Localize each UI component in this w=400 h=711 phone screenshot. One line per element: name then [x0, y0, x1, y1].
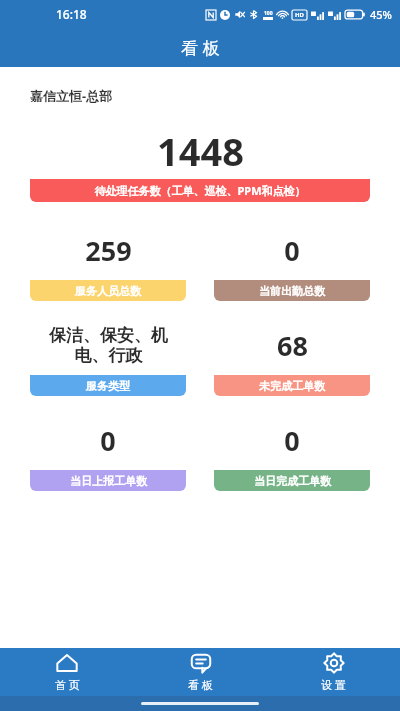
staticText: 当前出勤总数: [259, 284, 325, 298]
staticText: 16:18: [56, 6, 87, 22]
staticText: 当日完成工单数: [254, 474, 331, 488]
button[interactable]: 0: [30, 411, 186, 491]
staticText: 设 置: [321, 677, 346, 692]
staticText: 68: [277, 327, 308, 364]
staticText: 服务人员总数: [75, 284, 141, 298]
button[interactable]: Settings: [267, 648, 400, 696]
button[interactable]: 68: [214, 316, 370, 396]
staticText: 0: [284, 232, 300, 269]
button[interactable]: 保洁、保安、机 电、行政: [30, 316, 186, 396]
staticText: 嘉信立恒-总部: [30, 87, 113, 105]
staticText: 看 板: [188, 677, 213, 692]
staticText: 看 板: [181, 36, 220, 59]
button[interactable]: Home: [0, 648, 134, 696]
staticText: 当日上报工单数: [70, 474, 147, 488]
button[interactable]: 0: [214, 221, 370, 301]
staticText: 服务类型: [86, 379, 130, 393]
staticText: 1448: [157, 125, 244, 177]
button[interactable]: 0: [214, 411, 370, 491]
staticText: 100: [264, 10, 273, 17]
staticText: 0: [100, 422, 116, 459]
staticText: 0: [284, 422, 300, 459]
staticText: 保洁、保安、机 电、行政: [49, 325, 168, 366]
staticText: HD: [295, 11, 304, 19]
staticText: 45%: [370, 7, 392, 22]
staticText: 未完成工单数: [259, 379, 325, 393]
staticText: 待处理任务数（工单、巡检、PPM和点检）: [94, 183, 306, 198]
button[interactable]: 1448: [30, 122, 370, 202]
button[interactable]: 259: [30, 221, 186, 301]
staticText: 首 页: [55, 677, 80, 692]
button[interactable]: Dashboard: [134, 648, 267, 696]
staticText: 259: [85, 232, 132, 269]
